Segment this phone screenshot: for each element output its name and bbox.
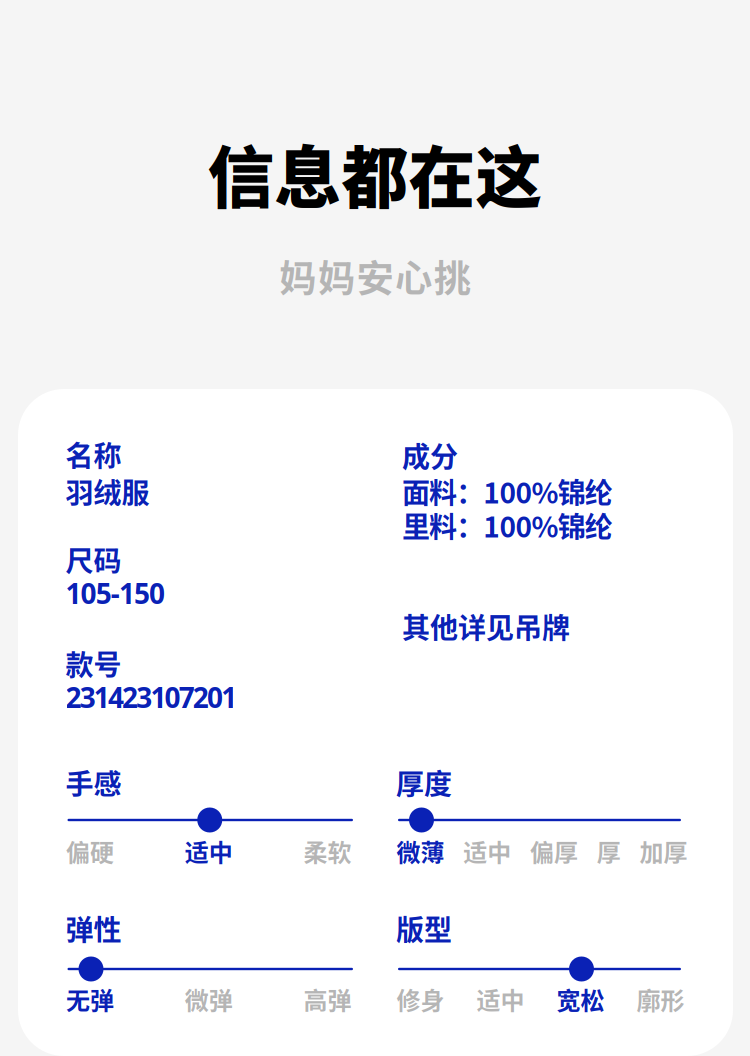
staticText: 厚度 xyxy=(396,762,452,802)
button[interactable]: 厚度 微薄 xyxy=(392,835,449,867)
staticText: 信息都在这 xyxy=(207,125,542,221)
staticText: 偏硬 xyxy=(66,834,114,868)
button[interactable]: 版型 修身 xyxy=(392,983,449,1015)
staticText: 妈妈安心挑 xyxy=(279,249,471,303)
staticText: 厚 xyxy=(597,834,621,868)
button[interactable]: 手感 偏硬 xyxy=(61,835,118,867)
button[interactable]: 厚度 厚 xyxy=(592,835,625,867)
staticText: 修身 xyxy=(396,982,444,1016)
button[interactable]: 手感 柔软 xyxy=(299,835,356,867)
staticText: 105-150 xyxy=(65,574,165,612)
button[interactable]: 手感 适中 xyxy=(180,835,237,867)
button[interactable]: 厚度 加厚 xyxy=(635,835,692,867)
staticText: 羽绒服 xyxy=(65,471,149,511)
staticText: 廓形 xyxy=(636,982,684,1016)
staticText: 加厚 xyxy=(639,834,687,868)
staticText: 适中 xyxy=(185,834,233,868)
staticText: 里料：100%锦纶 xyxy=(402,505,613,545)
staticText: 适中 xyxy=(476,982,524,1016)
staticText: 名称 xyxy=(65,434,121,474)
staticText: 231423107201 xyxy=(65,678,237,716)
button[interactable]: 弹性 无弹 xyxy=(61,983,118,1015)
staticText: 其他详见吊牌 xyxy=(402,606,570,646)
staticText: 尺码 xyxy=(65,539,121,579)
staticText: 偏厚 xyxy=(530,834,578,868)
staticText: 柔软 xyxy=(303,834,351,868)
staticText: 微薄 xyxy=(396,834,444,868)
staticText: 无弹 xyxy=(66,982,114,1016)
staticText: 面料：100%锦纶 xyxy=(402,471,613,511)
button[interactable]: 厚度 偏厚 xyxy=(525,835,582,867)
staticText: 宽松 xyxy=(556,982,604,1016)
staticText: 版型 xyxy=(396,908,452,948)
button[interactable]: 弹性 高弹 xyxy=(299,983,356,1015)
button[interactable]: 版型 适中 xyxy=(472,983,529,1015)
staticText: 款号 xyxy=(65,643,121,683)
staticText: 手感 xyxy=(65,762,121,802)
staticText: 弹性 xyxy=(65,908,121,948)
button[interactable]: 厚度 适中 xyxy=(459,835,516,867)
button[interactable]: 弹性 微弹 xyxy=(180,983,237,1015)
button[interactable]: 版型 宽松 xyxy=(552,983,609,1015)
staticText: 高弹 xyxy=(303,982,351,1016)
staticText: 微弹 xyxy=(185,982,233,1016)
staticText: 成分 xyxy=(402,435,458,475)
button[interactable]: 版型 廓形 xyxy=(632,983,689,1015)
staticText: 适中 xyxy=(463,834,511,868)
